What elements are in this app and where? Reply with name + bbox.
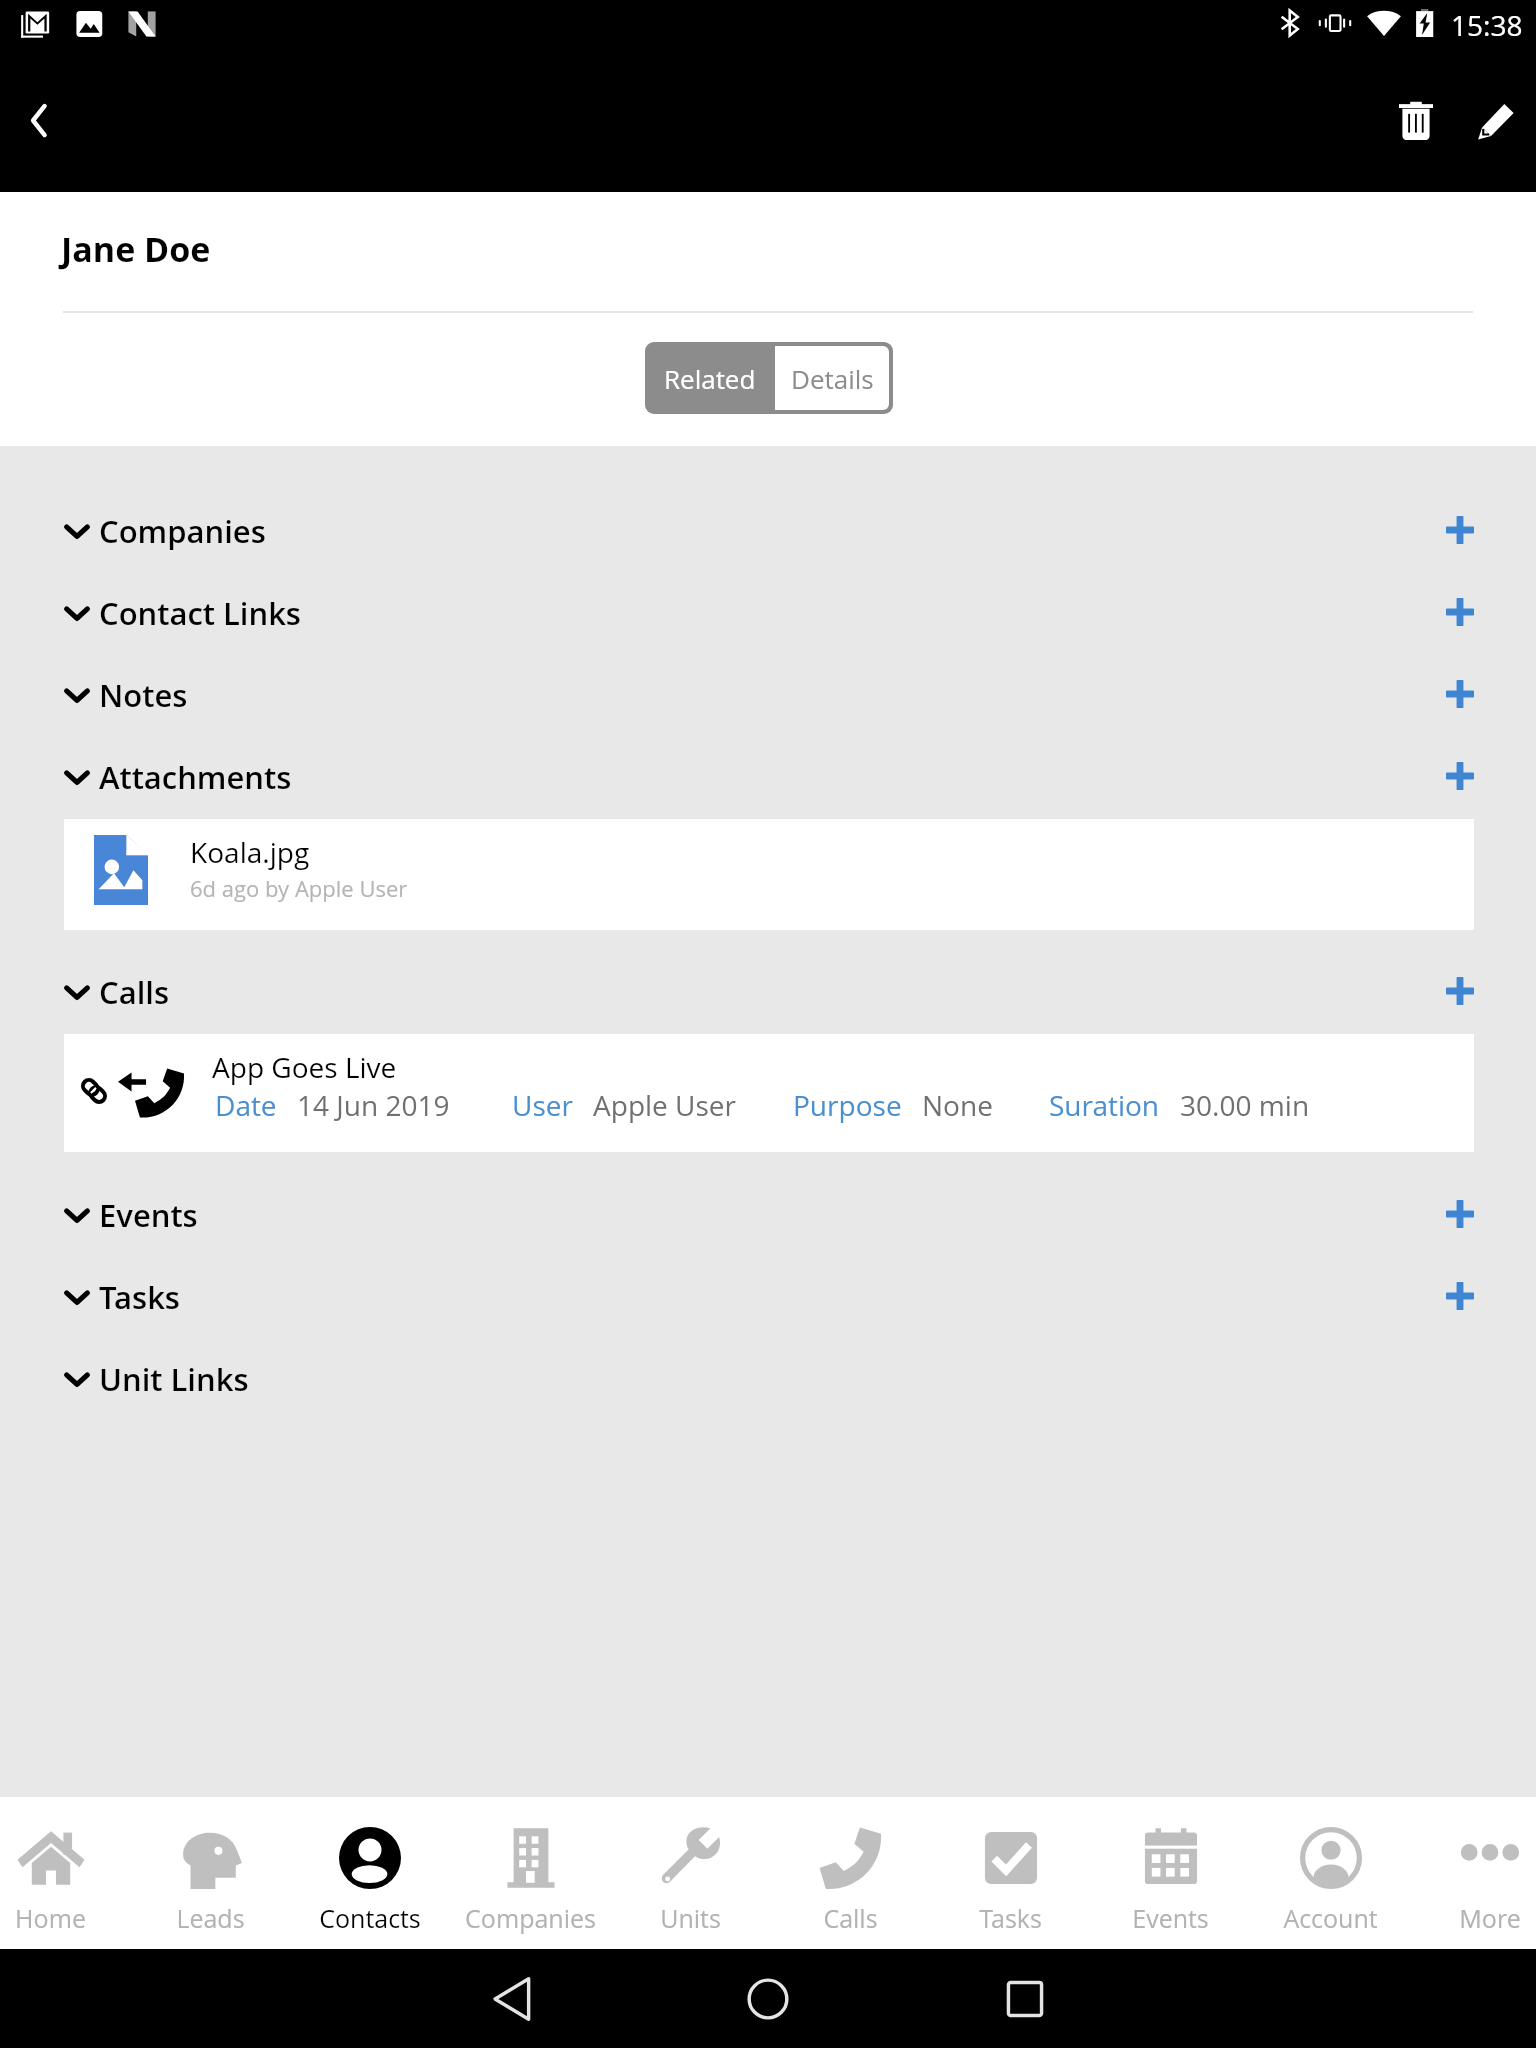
button[interactable]: Details xyxy=(775,346,889,410)
button[interactable]: Add Calls xyxy=(1424,955,1496,1027)
button[interactable]: Unit Links xyxy=(0,1339,1536,1421)
staticText: App Goes Live xyxy=(212,1048,397,1086)
button[interactable]: Add Tasks xyxy=(1424,1260,1496,1332)
button[interactable]: Tasks xyxy=(0,1257,1536,1339)
button[interactable]: Add Contact Links xyxy=(1424,576,1496,648)
staticText: Contacts xyxy=(319,1901,421,1935)
staticText: Jane Doe xyxy=(61,226,211,272)
button[interactable]: Edit xyxy=(1460,64,1532,176)
staticText: 6d ago by Apple User xyxy=(190,873,408,903)
staticText: Leads xyxy=(176,1901,245,1935)
button[interactable]: Recent apps xyxy=(974,1949,1076,2048)
staticText: Notes xyxy=(99,674,188,716)
staticText: Unit Links xyxy=(99,1358,249,1400)
button[interactable]: Calls xyxy=(0,952,1536,1034)
button[interactable]: Companies xyxy=(450,1797,610,1949)
staticText: Companies xyxy=(99,510,266,552)
staticText: Units xyxy=(660,1901,721,1935)
button[interactable]: Companies xyxy=(0,491,1536,573)
button[interactable]: Delete xyxy=(1380,64,1452,176)
staticText: Date xyxy=(215,1086,277,1124)
staticText: User xyxy=(512,1086,573,1124)
button[interactable]: Add Companies xyxy=(1424,494,1496,566)
button[interactable]: Contact Links xyxy=(0,573,1536,655)
staticText: 30.00 min xyxy=(1180,1086,1310,1124)
button[interactable]: Attachments xyxy=(0,737,1536,819)
button[interactable]: Tasks xyxy=(930,1797,1090,1949)
staticText: Suration xyxy=(1049,1086,1160,1124)
button[interactable]: Related xyxy=(645,342,775,414)
staticText: Account xyxy=(1283,1901,1378,1935)
staticText: Tasks xyxy=(979,1901,1042,1935)
staticText: More xyxy=(1459,1901,1521,1935)
button[interactable]: Home xyxy=(0,1797,130,1949)
staticText: 15:38 xyxy=(1451,6,1523,44)
staticText: Details xyxy=(791,361,874,396)
button[interactable]: Units xyxy=(610,1797,770,1949)
staticText: Related xyxy=(664,361,756,396)
staticText: Calls xyxy=(823,1901,878,1935)
staticText: Companies xyxy=(465,1901,596,1935)
button[interactable]: Navigate up xyxy=(2,64,74,176)
staticText: Home xyxy=(15,1901,86,1935)
staticText: 14 Jun 2019 xyxy=(297,1086,450,1124)
button[interactable]: Leads xyxy=(130,1797,290,1949)
button[interactable]: Koala.jpg xyxy=(64,819,1474,930)
staticText: Attachments xyxy=(99,756,292,798)
staticText: Purpose xyxy=(793,1086,902,1124)
staticText: Calls xyxy=(99,971,170,1013)
staticText: Tasks xyxy=(99,1276,180,1318)
button[interactable]: Home xyxy=(717,1949,819,2048)
button[interactable]: Contacts xyxy=(290,1797,450,1949)
staticText: Events xyxy=(1132,1901,1209,1935)
staticText: Events xyxy=(99,1194,198,1236)
staticText: Apple User xyxy=(593,1086,736,1124)
button[interactable]: App Goes Live xyxy=(64,1034,1474,1152)
staticText: Contact Links xyxy=(99,592,301,634)
button[interactable]: Events xyxy=(1090,1797,1250,1949)
button[interactable]: More xyxy=(1410,1797,1536,1949)
staticText: None xyxy=(922,1086,993,1124)
button[interactable]: Add Notes xyxy=(1424,658,1496,730)
button[interactable]: Notes xyxy=(0,655,1536,737)
button[interactable]: Add Events xyxy=(1424,1178,1496,1250)
button[interactable]: Events xyxy=(0,1175,1536,1257)
button[interactable]: Account xyxy=(1250,1797,1410,1949)
staticText: Koala.jpg xyxy=(190,833,310,871)
button[interactable]: Back xyxy=(462,1949,564,2048)
button[interactable]: Add Attachments xyxy=(1424,740,1496,812)
button[interactable]: Calls xyxy=(770,1797,930,1949)
